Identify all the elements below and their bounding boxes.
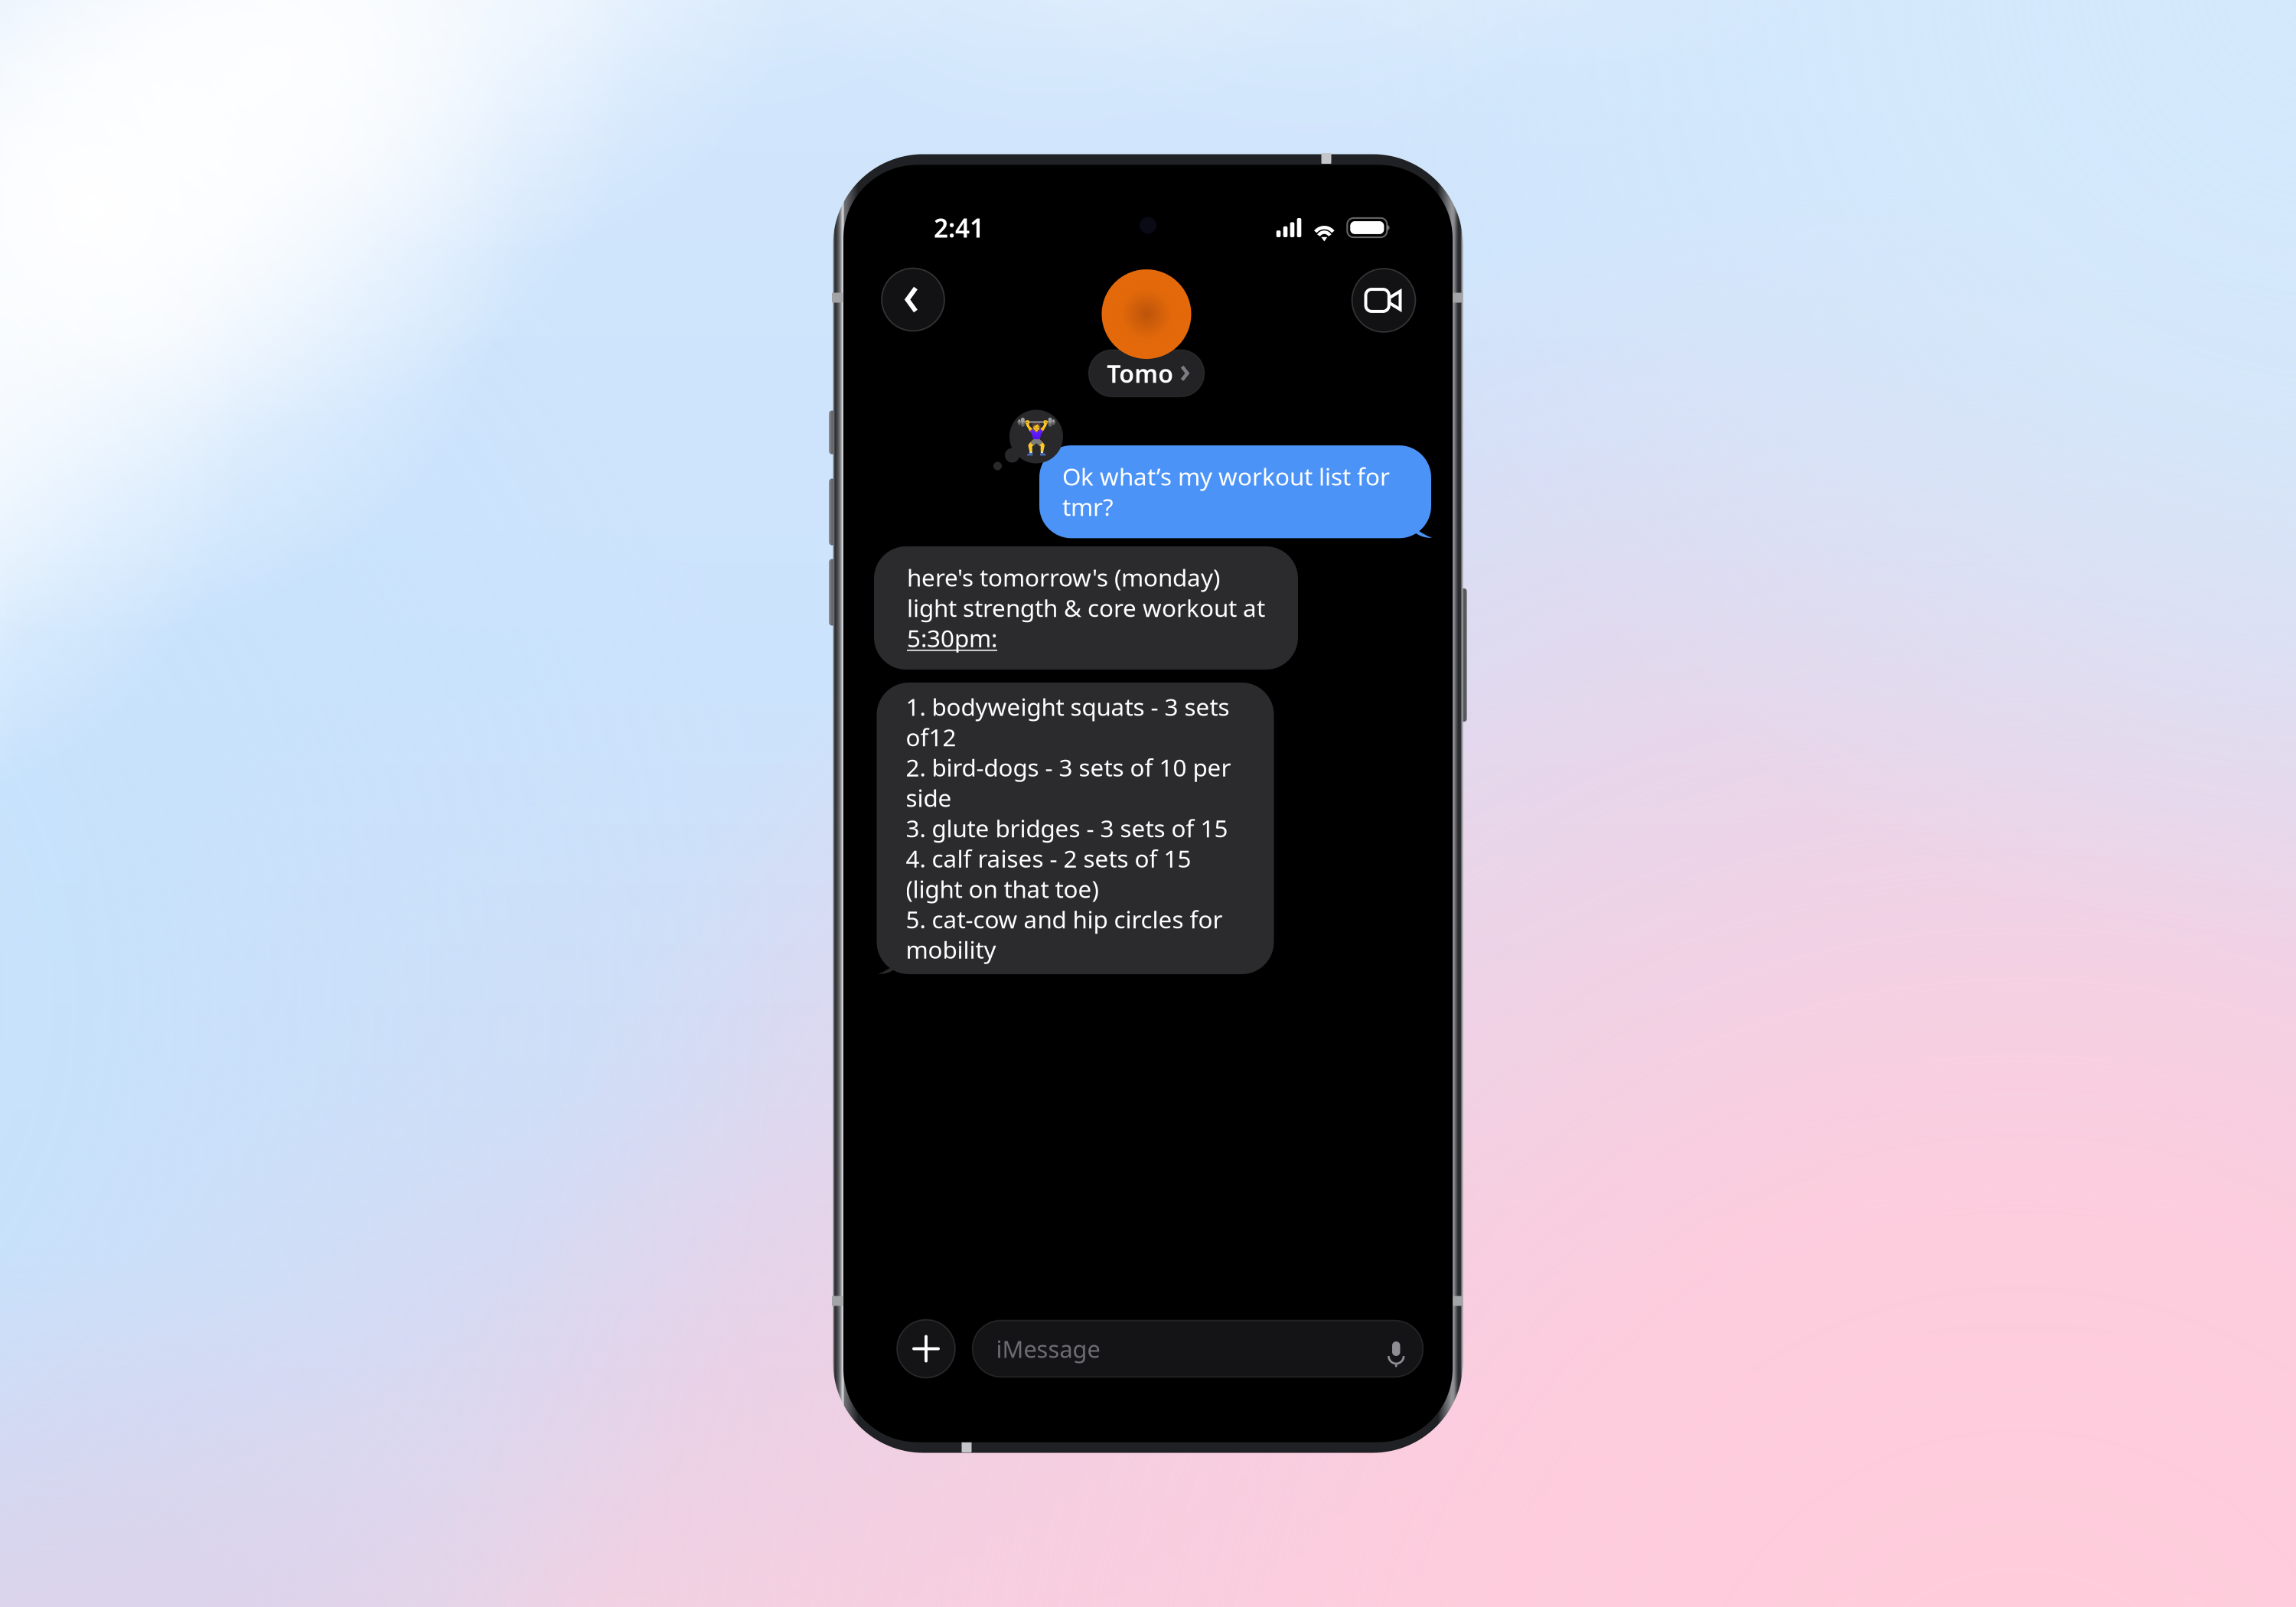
- button[interactable]: iMessage text field: [972, 1320, 1423, 1377]
- staticText: 2:41: [934, 210, 984, 245]
- staticText: Tomo: [1107, 357, 1173, 390]
- button[interactable]: Back: [882, 268, 944, 331]
- button[interactable]: Tomo, contact info: [1070, 249, 1223, 379]
- button[interactable]: FaceTime video call: [1352, 269, 1415, 332]
- staticText: here's tomorrow's (monday) light strengt…: [907, 561, 1265, 654]
- staticText: 1. bodyweight squats - 3 sets of12 2. bi…: [906, 690, 1231, 966]
- staticText: iMessage: [996, 1333, 1100, 1365]
- button[interactable]: Add attachment: [897, 1320, 955, 1378]
- staticText: 🏋️‍♀️: [1015, 416, 1058, 457]
- staticText: Ok what’s my workout list for tmr?: [1062, 460, 1390, 523]
